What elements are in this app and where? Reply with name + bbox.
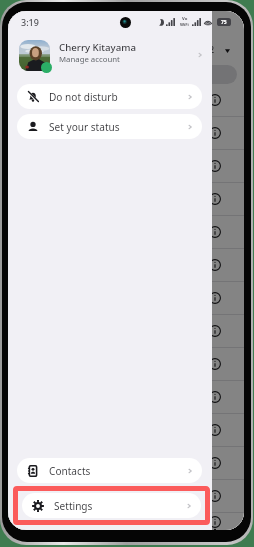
- button[interactable]: Cherry Kitayama: [8, 38, 212, 72]
- button[interactable]: Contacts: [17, 458, 202, 483]
- staticText: Manage account: [59, 54, 120, 65]
- staticText: Cherry Kitayama: [59, 41, 136, 54]
- staticText: Do not disturb: [49, 90, 118, 104]
- staticText: Vo: [182, 16, 188, 22]
- staticText: 3:19: [21, 16, 39, 28]
- staticText: 2: [209, 43, 215, 55]
- button[interactable]: Settings: [22, 493, 201, 518]
- staticText: Settings: [54, 499, 93, 513]
- button[interactable]: Do not disturb: [17, 84, 202, 109]
- staticText: WiFi: [180, 22, 189, 28]
- staticText: Set your status: [49, 120, 120, 134]
- staticText: Contacts: [49, 464, 91, 478]
- staticText: 75: [221, 19, 227, 26]
- button[interactable]: Set your status: [17, 114, 202, 139]
